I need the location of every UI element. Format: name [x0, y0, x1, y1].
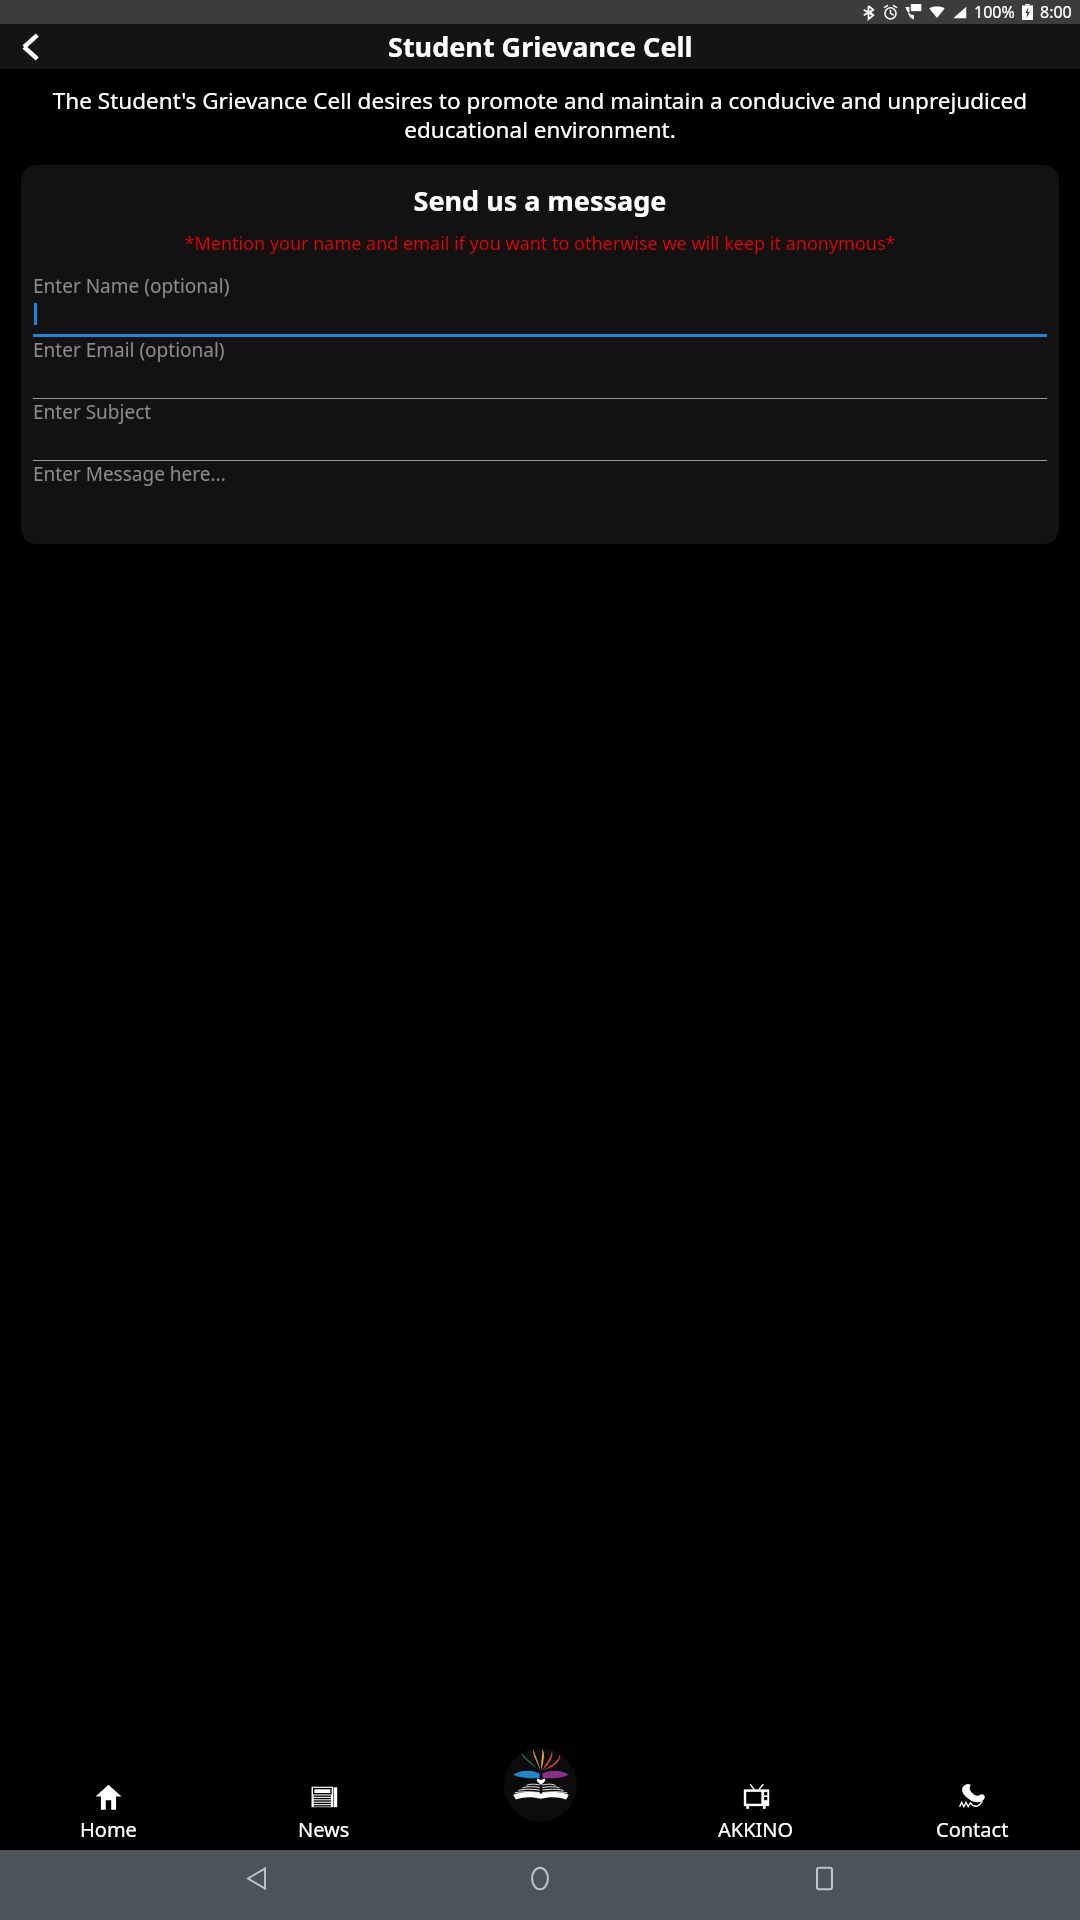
- button[interactable]: News: [216, 1776, 432, 1843]
- button[interactable]: Enter Message here...: [33, 461, 1047, 544]
- button[interactable]: Enter Email (optional): [33, 337, 1047, 399]
- button[interactable]: Home: [0, 1776, 216, 1843]
- staticText: Contact: [936, 1816, 1009, 1843]
- staticText: Enter Subject: [33, 399, 152, 425]
- staticText: Home: [80, 1816, 137, 1843]
- staticText: The Student's Grievance Cell desires to …: [12, 85, 1068, 144]
- button[interactable]: Back: [12, 29, 48, 65]
- staticText: News: [298, 1816, 350, 1843]
- staticText: Send us a message: [21, 182, 1059, 219]
- button[interactable]: Enter Subject: [33, 399, 1047, 461]
- staticText: Enter Email (optional): [33, 337, 225, 363]
- staticText: Enter Name (optional): [33, 273, 230, 299]
- staticText: 100%: [974, 1, 1015, 23]
- staticText: Enter Message here...: [33, 461, 226, 487]
- button[interactable]: Home: [512, 1850, 568, 1906]
- staticText: 8:00: [1040, 1, 1072, 23]
- staticText: *Mention your name and email if you want…: [32, 231, 1048, 256]
- button[interactable]: Back: [228, 1850, 284, 1906]
- staticText: Student Grievance Cell: [388, 28, 693, 65]
- staticText: AKKINO: [718, 1816, 794, 1843]
- button[interactable]: Enter Name (optional): [33, 273, 1047, 337]
- button[interactable]: Atharva Group of Institutes: [504, 1748, 577, 1822]
- button[interactable]: Recent apps: [796, 1850, 852, 1906]
- button[interactable]: Contact: [864, 1776, 1080, 1843]
- button[interactable]: AKKINO: [648, 1776, 864, 1843]
